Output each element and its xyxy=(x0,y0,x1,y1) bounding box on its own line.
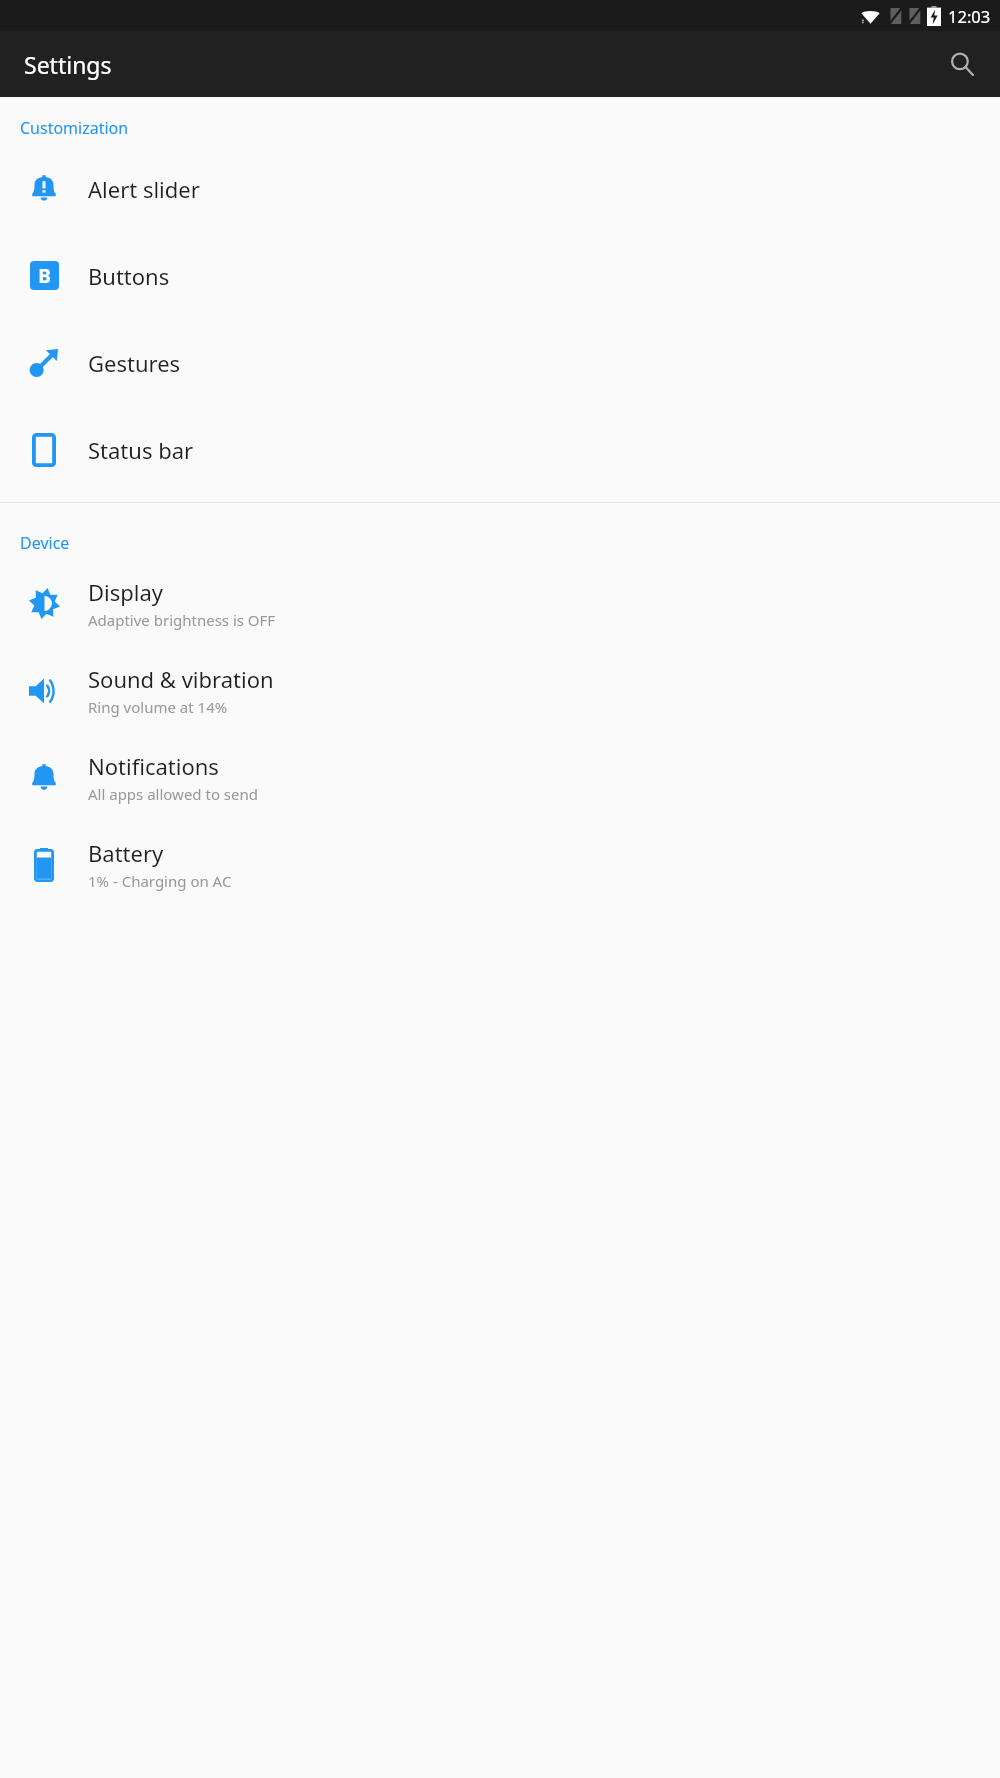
staticText: Adaptive brightness is OFF xyxy=(88,610,276,630)
button[interactable]: Status bar xyxy=(0,406,1000,493)
staticText: Sound & vibration xyxy=(88,664,274,694)
button[interactable]: Search xyxy=(938,40,986,88)
staticText: Gestures xyxy=(88,348,181,378)
staticText: Alert slider xyxy=(88,174,200,204)
staticText: Status bar xyxy=(88,435,194,465)
button[interactable]: Gestures xyxy=(0,319,1000,406)
staticText: Settings xyxy=(24,49,112,80)
staticText: 1% - Charging on AC xyxy=(88,871,232,891)
staticText: Ring volume at 14% xyxy=(88,697,228,717)
staticText: B xyxy=(38,263,51,289)
button[interactable]: Alert slider xyxy=(0,145,1000,232)
staticText: All apps allowed to send xyxy=(88,784,259,804)
staticText: Battery xyxy=(88,838,164,868)
staticText: Buttons xyxy=(88,261,170,291)
staticText: 12:03 xyxy=(948,5,991,27)
button[interactable]: Notifications xyxy=(0,734,1000,821)
staticText: Customization xyxy=(20,117,129,139)
staticText: Display xyxy=(88,577,164,607)
staticText: Device xyxy=(20,532,70,554)
staticText: Notifications xyxy=(88,751,219,781)
button[interactable]: Sound & vibration xyxy=(0,647,1000,734)
button[interactable]: Display xyxy=(0,560,1000,647)
button[interactable]: B xyxy=(0,232,1000,319)
button[interactable]: Battery xyxy=(0,821,1000,908)
